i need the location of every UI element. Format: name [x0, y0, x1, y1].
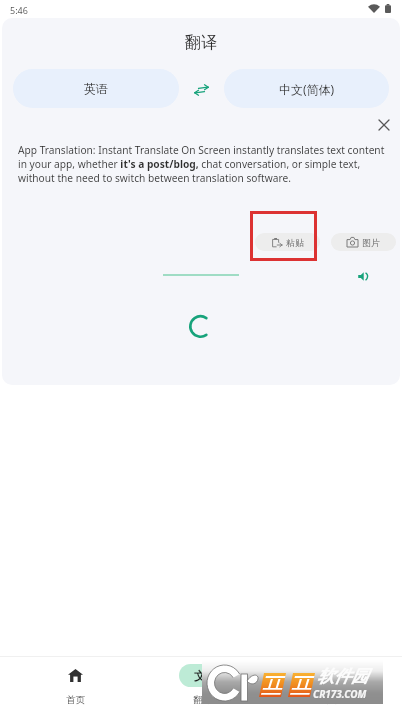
staticText: CR173.COM	[313, 687, 367, 701]
staticText: A	[204, 673, 210, 684]
button[interactable]: 中文(简体)	[224, 69, 389, 108]
staticText: 英语	[84, 81, 108, 96]
staticText: 文	[194, 668, 206, 682]
button[interactable]: Close	[372, 113, 395, 136]
staticText: App Translation: Instant Translate On Sc…	[18, 143, 390, 185]
staticText: 首页	[66, 694, 85, 706]
button[interactable]: 首页	[12, 656, 139, 715]
staticText: 中文(简体)	[279, 81, 335, 97]
staticText: 我的	[319, 694, 338, 706]
button[interactable]: Swap languages	[189, 77, 214, 102]
staticText: 图片	[362, 237, 380, 248]
button[interactable]: 图片	[331, 233, 396, 251]
button[interactable]: 我的	[265, 656, 392, 715]
staticText: 粘贴	[286, 237, 304, 248]
button[interactable]: 粘贴	[255, 233, 320, 251]
staticText: 翻译	[193, 694, 212, 706]
staticText: 翻译	[2, 33, 400, 53]
staticText: 软件园	[317, 666, 368, 687]
staticText: 5:46	[10, 4, 28, 16]
button[interactable]: Play pronunciation	[351, 264, 375, 288]
button[interactable]: 英语	[13, 69, 179, 108]
button[interactable]: 文	[139, 656, 266, 715]
